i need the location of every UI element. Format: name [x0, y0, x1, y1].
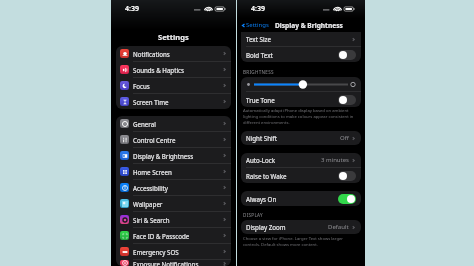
button[interactable]: General — [116, 116, 231, 132]
staticText: Face ID & Passcode — [133, 232, 222, 240]
staticText: Night Shift — [246, 134, 340, 142]
staticText: Default — [328, 223, 349, 231]
button[interactable]: Display Zoom — [241, 220, 361, 234]
staticText: DISPLAY — [243, 212, 263, 218]
button[interactable]: Raise to Wake off — [338, 171, 356, 181]
button[interactable]: Auto-Lock — [241, 153, 361, 168]
staticText: Focus — [133, 82, 222, 90]
staticText: Always On — [246, 195, 338, 203]
staticText: 4:39 — [251, 4, 265, 14]
staticText: Accessibility — [133, 184, 222, 192]
button[interactable]: Always On on — [338, 194, 356, 204]
staticText: Sounds & Haptics — [133, 66, 222, 74]
staticText: Text Size — [246, 35, 351, 43]
staticText: 4:39 — [125, 4, 139, 14]
button[interactable]: Control Centre — [116, 132, 231, 148]
staticText: Auto-Lock — [246, 156, 321, 164]
button[interactable]: Sounds & Haptics — [116, 62, 231, 78]
button[interactable]: Siri & Search — [116, 212, 231, 228]
button[interactable]: Focus — [116, 78, 231, 94]
staticText: Raise to Wake — [246, 172, 338, 180]
button[interactable]: Screen Time — [116, 94, 231, 109]
button[interactable]: Wallpaper — [116, 196, 231, 212]
staticText: BRIGHTNESS — [243, 69, 274, 75]
staticText: Control Centre — [133, 136, 222, 144]
button[interactable]: Face ID & Passcode — [116, 228, 231, 244]
staticText: Settings — [158, 32, 189, 42]
staticText: 3 minutes — [321, 156, 349, 164]
staticText: Wallpaper — [133, 200, 222, 208]
staticText: Home Screen — [133, 168, 222, 176]
staticText: Choose a view for iPhone. Larger Text sh… — [243, 236, 359, 248]
staticText: Bold Text — [246, 51, 338, 59]
staticText: Display & Brightness — [133, 152, 222, 160]
button[interactable]: Settings — [241, 21, 269, 29]
staticText: Settings — [246, 21, 269, 29]
staticText: True Tone — [246, 96, 338, 104]
button[interactable]: Notifications — [116, 46, 231, 62]
button[interactable]: Accessibility — [116, 180, 231, 196]
staticText: Off — [340, 134, 349, 142]
staticText: Siri & Search — [133, 216, 222, 224]
button[interactable]: True Tone off — [338, 95, 356, 105]
staticText: Emergency SOS — [133, 248, 222, 256]
button[interactable]: Night Shift — [241, 131, 361, 145]
button[interactable]: Home Screen — [116, 164, 231, 180]
button[interactable]: Emergency SOS — [116, 244, 231, 260]
staticText: General — [133, 120, 222, 128]
staticText: Display Zoom — [246, 223, 328, 231]
button[interactable]: Exposure Notifications — [116, 260, 231, 266]
staticText: Exposure Notifications — [133, 260, 222, 266]
staticText: Notifications — [133, 50, 222, 58]
staticText: Automatically adapt iPhone display based… — [243, 108, 359, 126]
button[interactable]: Text Size — [241, 32, 361, 47]
button[interactable]: Bold Text off — [338, 50, 356, 60]
button[interactable]: Display & Brightness — [116, 148, 231, 164]
staticText: Display & Brightness — [275, 21, 343, 30]
staticText: Screen Time — [133, 98, 222, 106]
